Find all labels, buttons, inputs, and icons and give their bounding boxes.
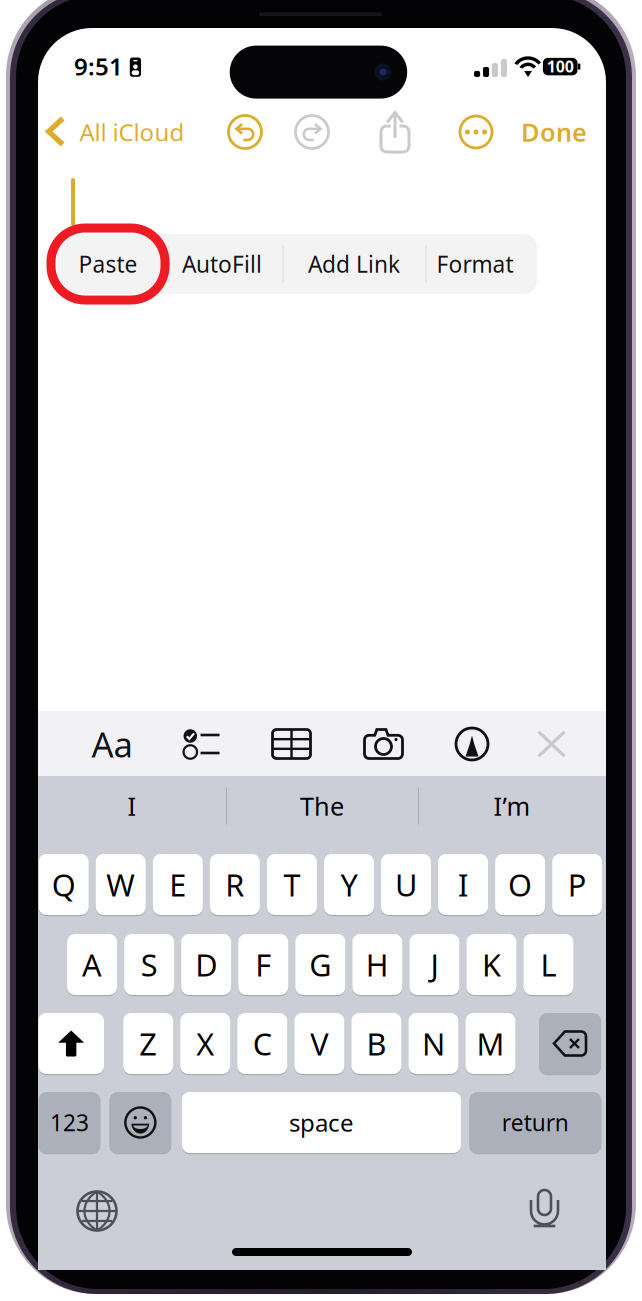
button[interactable]: N — [408, 1012, 458, 1075]
staticText: Add Link — [308, 249, 400, 279]
staticText: Q — [52, 864, 76, 905]
staticText: Aa — [91, 721, 132, 767]
button[interactable]: O — [495, 853, 545, 916]
button[interactable]: Markup — [442, 716, 502, 772]
staticText: K — [482, 944, 501, 985]
button[interactable]: Redo — [289, 109, 335, 155]
button[interactable]: W — [96, 853, 146, 916]
staticText: E — [169, 864, 186, 905]
staticText: I — [458, 864, 468, 905]
button[interactable]: V — [294, 1012, 344, 1075]
button[interactable]: Done — [510, 108, 600, 156]
staticText: H — [366, 944, 389, 985]
staticText: T — [283, 864, 300, 905]
button[interactable]: AutoFill — [166, 234, 278, 294]
staticText: P — [568, 864, 587, 905]
staticText: Y — [340, 864, 357, 905]
button[interactable]: M — [465, 1012, 515, 1075]
staticText: A — [82, 944, 102, 985]
button[interactable]: I — [438, 853, 488, 916]
staticText: N — [422, 1023, 445, 1064]
staticText: return — [502, 1107, 569, 1137]
button[interactable]: D — [181, 933, 231, 996]
button[interactable] — [182, 1091, 461, 1154]
staticText: C — [253, 1023, 272, 1064]
button[interactable]: U — [381, 853, 431, 916]
staticText: Format — [436, 249, 513, 279]
staticText: M — [476, 1023, 504, 1064]
button[interactable]: B — [351, 1012, 401, 1075]
button[interactable]: Delete — [539, 1012, 601, 1075]
button[interactable]: More — [453, 110, 499, 154]
button[interactable]: F — [238, 933, 288, 996]
staticText: AutoFill — [182, 249, 262, 279]
staticText: All iCloud — [79, 116, 184, 148]
button[interactable]: G — [295, 933, 345, 996]
button[interactable]: Switch keyboard — [68, 1182, 126, 1240]
staticText: S — [141, 944, 158, 985]
staticText: W — [106, 864, 135, 905]
button[interactable]: Emoji — [109, 1091, 171, 1154]
button[interactable]: Close keyboard — [522, 716, 582, 772]
button[interactable]: All iCloud — [42, 108, 194, 156]
button[interactable]: The — [232, 777, 412, 835]
button[interactable]: K — [466, 933, 516, 996]
button[interactable]: E — [153, 853, 203, 916]
staticText: I — [127, 789, 136, 823]
staticText: R — [225, 864, 244, 905]
button[interactable]: Checklist — [171, 716, 231, 772]
button[interactable]: Z — [123, 1012, 173, 1075]
button[interactable]: Camera — [353, 716, 413, 772]
staticText: U — [395, 864, 417, 905]
button[interactable] — [39, 1091, 100, 1154]
staticText: Done — [521, 115, 587, 149]
button[interactable]: Text style — [82, 716, 142, 772]
button[interactable]: I — [42, 777, 222, 835]
staticText: The — [300, 789, 344, 823]
staticText: I’m — [493, 789, 530, 823]
button[interactable]: Table — [261, 716, 321, 772]
staticText: J — [430, 944, 438, 985]
button[interactable]: T — [267, 853, 317, 916]
staticText: Paste — [78, 249, 137, 279]
button[interactable]: C — [237, 1012, 287, 1075]
button[interactable]: Shift — [38, 1012, 104, 1075]
button[interactable]: X — [180, 1012, 230, 1075]
staticText: L — [540, 944, 556, 985]
button[interactable]: Format — [419, 234, 531, 294]
button[interactable]: P — [552, 853, 602, 916]
staticText: B — [366, 1023, 386, 1064]
button[interactable]: Y — [324, 853, 374, 916]
button[interactable]: A — [67, 933, 117, 996]
button[interactable]: Dictate — [516, 1182, 574, 1240]
staticText: space — [289, 1107, 354, 1138]
staticText: V — [310, 1023, 328, 1064]
staticText: 123 — [50, 1107, 89, 1137]
button[interactable]: R — [210, 853, 260, 916]
button[interactable]: Q — [39, 853, 89, 916]
staticText: X — [196, 1023, 214, 1064]
button[interactable]: L — [523, 933, 573, 996]
staticText: G — [309, 944, 331, 985]
button[interactable]: J — [409, 933, 459, 996]
button[interactable]: I’m — [422, 777, 602, 835]
button[interactable]: Undo — [222, 109, 268, 155]
staticText: D — [195, 944, 217, 985]
button[interactable]: Paste — [52, 234, 164, 294]
staticText: O — [508, 864, 532, 905]
button[interactable]: S — [124, 933, 174, 996]
staticText: Z — [139, 1023, 157, 1064]
button[interactable] — [469, 1091, 601, 1154]
button[interactable]: H — [352, 933, 402, 996]
staticText: F — [255, 944, 271, 985]
staticText: 9:51 — [74, 50, 123, 82]
button[interactable]: Share — [372, 106, 418, 158]
button[interactable]: Add Link — [298, 234, 410, 294]
staticText: 100 — [547, 56, 574, 77]
